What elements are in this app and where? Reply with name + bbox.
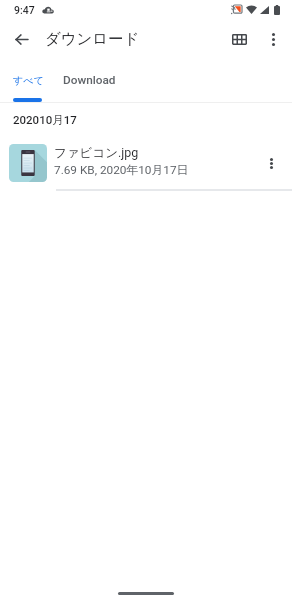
- staticText: 202010月17: [13, 113, 77, 127]
- staticText: ダウンロード: [45, 29, 140, 48]
- button[interactable]: More options: [257, 23, 289, 55]
- button[interactable]: More options: [255, 147, 287, 179]
- staticText: ファビコン.jpg: [54, 145, 139, 161]
- button[interactable]: すべて: [0, 57, 51, 103]
- staticText: すべて: [13, 74, 44, 87]
- button[interactable]: ファビコン.jpg: [0, 137, 292, 189]
- button[interactable]: Back: [5, 23, 37, 55]
- staticText: Download: [63, 73, 116, 87]
- staticText: 7.69 KB, 2020年10月17日: [54, 163, 189, 178]
- button[interactable]: Download: [51, 57, 128, 103]
- staticText: 9:47: [14, 4, 35, 16]
- button[interactable]: Grid view: [223, 23, 255, 55]
